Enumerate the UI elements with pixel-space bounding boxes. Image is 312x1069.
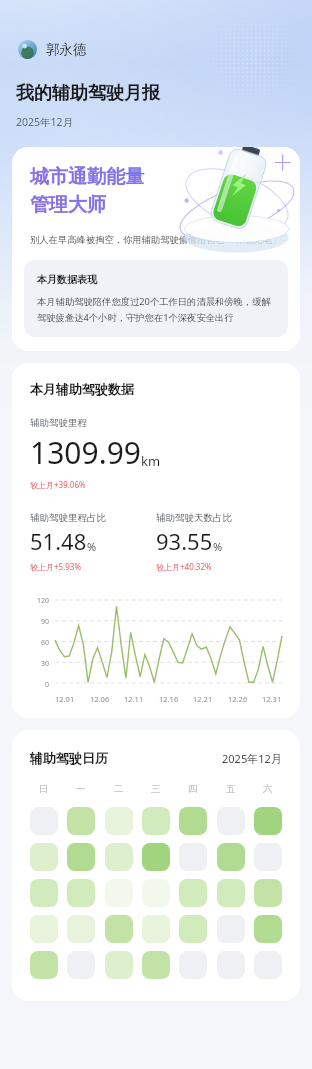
staticText: 12.31 <box>262 694 282 704</box>
staticText: 郭永德 <box>46 41 87 58</box>
button[interactable] <box>179 843 207 871</box>
button[interactable] <box>217 807 245 835</box>
button[interactable] <box>30 951 58 979</box>
staticText: 2025年12月 <box>16 115 74 129</box>
staticText: 较上月+39.06% <box>30 479 86 490</box>
button[interactable] <box>254 915 282 943</box>
staticText: 一 <box>76 783 86 795</box>
staticText: 六 <box>263 783 273 795</box>
button[interactable] <box>217 879 245 907</box>
button[interactable] <box>30 807 58 835</box>
staticText: 本月辅助驾驶陪伴您度过20个工作日的清晨和傍晚，缓解驾驶疲惫达4个小时，守护您在… <box>37 295 275 324</box>
staticText: 辅助驾驶里程占比 <box>30 512 106 524</box>
staticText: 12.11 <box>124 694 144 704</box>
button[interactable] <box>30 879 58 907</box>
button[interactable] <box>254 879 282 907</box>
staticText: % <box>213 539 223 554</box>
staticText: 城市通勤能量 <box>30 165 144 189</box>
staticText: 12.26 <box>228 694 248 704</box>
staticText: 本月辅助驾驶数据 <box>30 381 134 397</box>
button[interactable] <box>142 915 170 943</box>
button[interactable] <box>30 843 58 871</box>
staticText: 四 <box>188 783 198 795</box>
staticText: 日 <box>39 783 49 795</box>
button[interactable] <box>105 915 133 943</box>
staticText: 60 <box>41 638 50 648</box>
staticText: 辅助驾驶日历 <box>30 750 108 766</box>
staticText: 较上月+5.93% <box>30 561 82 572</box>
staticText: 90 <box>41 617 50 627</box>
staticText: 别人在早高峰被掏空，你用辅助驾驶偷偷给自己「补能充电」 <box>30 234 282 246</box>
button[interactable] <box>254 843 282 871</box>
button[interactable] <box>142 843 170 871</box>
button[interactable]: 城市通勤能量 <box>12 147 300 351</box>
button[interactable] <box>142 951 170 979</box>
staticText: 0 <box>45 680 50 690</box>
button[interactable] <box>67 951 95 979</box>
button[interactable]: User avatar <box>16 38 89 61</box>
staticText: 51.48 <box>30 526 87 556</box>
button[interactable] <box>30 915 58 943</box>
staticText: 较上月+40.32% <box>156 561 212 572</box>
button[interactable] <box>67 843 95 871</box>
staticText: 1309.99 <box>30 432 141 473</box>
button[interactable] <box>105 807 133 835</box>
button[interactable] <box>142 879 170 907</box>
staticText: 120 <box>37 596 50 606</box>
button[interactable] <box>217 915 245 943</box>
button[interactable]: 本月数据表现 <box>24 260 288 337</box>
staticText: 本月数据表现 <box>37 273 97 286</box>
staticText: 五 <box>226 783 236 795</box>
staticText: 2025年12月 <box>222 751 282 766</box>
button[interactable] <box>179 951 207 979</box>
button[interactable] <box>254 951 282 979</box>
staticText: 93.55 <box>156 526 213 556</box>
staticText: 30 <box>41 659 50 669</box>
staticText: 我的辅助驾驶月报 <box>16 82 160 105</box>
staticText: 12.16 <box>159 694 179 704</box>
button[interactable] <box>142 807 170 835</box>
staticText: % <box>87 539 97 554</box>
button[interactable] <box>217 951 245 979</box>
button[interactable] <box>105 951 133 979</box>
button[interactable]: 本月辅助驾驶数据 <box>12 363 300 718</box>
button[interactable] <box>105 843 133 871</box>
staticText: km <box>141 452 161 470</box>
staticText: 二 <box>114 783 124 795</box>
staticText: 三 <box>151 783 161 795</box>
button[interactable] <box>179 915 207 943</box>
staticText: 管理大师 <box>30 193 106 217</box>
button[interactable] <box>105 879 133 907</box>
button[interactable] <box>67 879 95 907</box>
other: User avatar <box>18 40 37 59</box>
button[interactable] <box>179 807 207 835</box>
button[interactable] <box>254 807 282 835</box>
button[interactable]: 辅助驾驶日历 <box>12 730 300 1001</box>
button[interactable] <box>217 843 245 871</box>
staticText: 12.01 <box>55 694 75 704</box>
button[interactable] <box>67 807 95 835</box>
staticText: 辅助驾驶天数占比 <box>156 512 232 524</box>
staticText: 12.21 <box>193 694 213 704</box>
button[interactable] <box>67 915 95 943</box>
staticText: 12.06 <box>90 694 110 704</box>
staticText: 辅助驾驶里程 <box>30 417 87 429</box>
button[interactable] <box>179 879 207 907</box>
